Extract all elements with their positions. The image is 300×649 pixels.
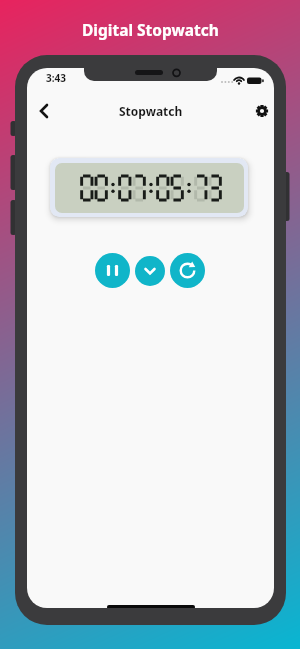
staticText: Digital Stopwatch xyxy=(82,19,219,40)
button[interactable] xyxy=(170,253,205,288)
button[interactable] xyxy=(95,253,130,288)
button[interactable] xyxy=(31,98,57,124)
staticText: Stopwatch xyxy=(119,103,183,119)
button[interactable] xyxy=(135,256,165,286)
staticText: 3:43 xyxy=(46,71,66,85)
button[interactable] xyxy=(249,98,274,124)
